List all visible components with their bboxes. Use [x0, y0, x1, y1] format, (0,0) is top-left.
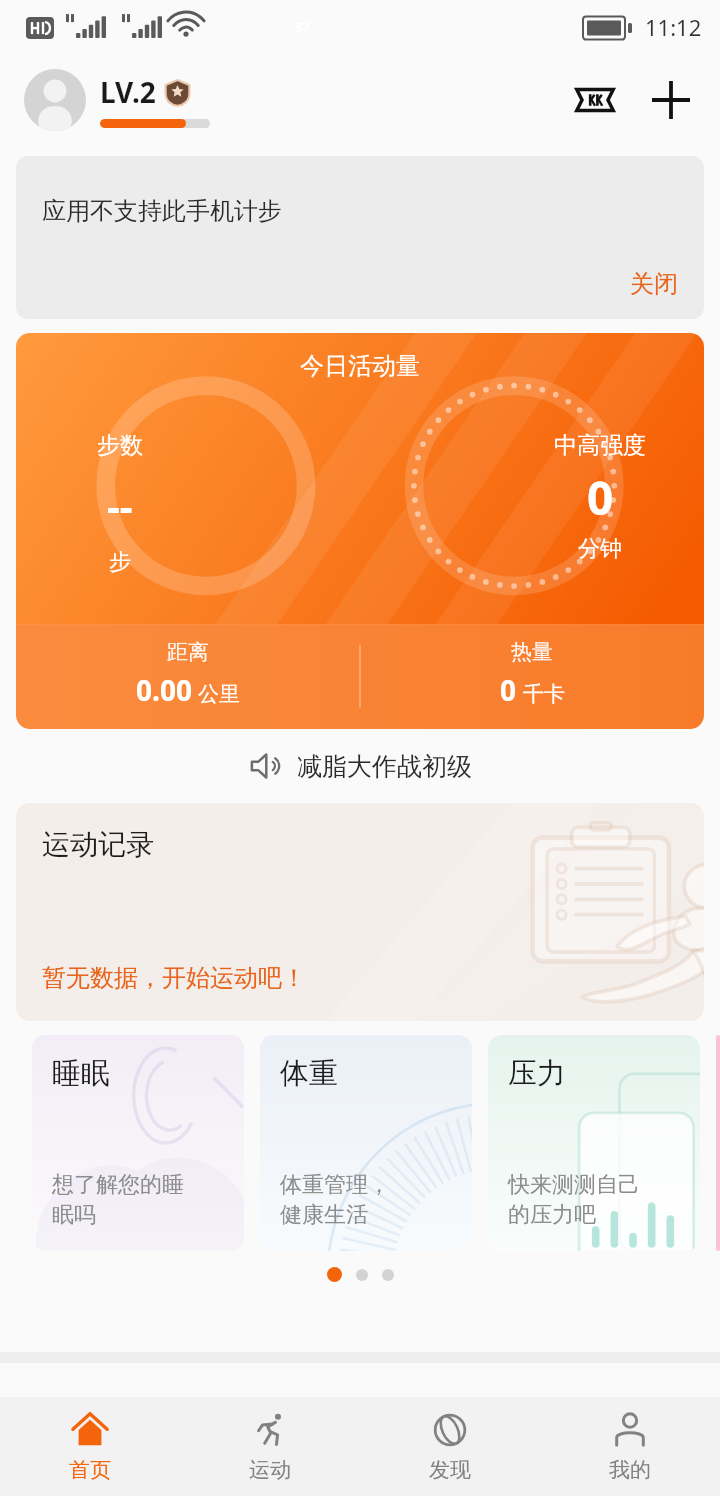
staticText: 0	[500, 671, 517, 709]
button[interactable]: 体重	[260, 1035, 472, 1251]
button[interactable]: 首页	[0, 1397, 180, 1496]
staticText: 压力	[508, 1055, 566, 1092]
staticText: 今日活动量	[300, 351, 420, 381]
staticText: 千卡	[523, 681, 565, 707]
staticText: 步数	[97, 431, 143, 460]
button[interactable]: 应用不支持此手机计步	[16, 156, 704, 319]
staticText: 步	[109, 548, 131, 576]
staticText: 想了解您的睡 眠吗	[52, 1171, 184, 1229]
staticText: 体重	[280, 1055, 338, 1092]
staticText: 发现	[429, 1457, 471, 1483]
staticText: 0	[587, 466, 614, 529]
button[interactable]: Profile	[24, 69, 86, 131]
button[interactable]: 压力	[488, 1035, 700, 1251]
staticText: 快来测测自己 的压力吧	[508, 1171, 640, 1229]
staticText: 首页	[69, 1457, 111, 1483]
button[interactable]: 运动	[180, 1397, 360, 1496]
staticText: 运动记录	[42, 827, 154, 862]
staticText: 中高强度	[554, 431, 646, 460]
staticText: 睡眠	[52, 1055, 110, 1092]
button[interactable]: 睡眠	[32, 1035, 244, 1251]
staticText: 距离	[167, 639, 209, 665]
button[interactable]: 关闭	[630, 269, 704, 319]
staticText: 公里	[198, 681, 240, 707]
staticText: 0.00	[136, 671, 192, 709]
staticText: 11:12	[645, 12, 702, 42]
staticText: 运动	[249, 1457, 291, 1483]
staticText: 我的	[609, 1457, 651, 1483]
button[interactable]: Add	[642, 71, 700, 129]
button[interactable]: 今日活动量	[16, 333, 704, 729]
staticText: --	[107, 478, 133, 532]
staticText: 应用不支持此手机计步	[42, 196, 282, 226]
button[interactable]: 我的	[540, 1397, 720, 1496]
staticText: LV.2	[100, 73, 156, 111]
button[interactable]: 运动记录	[16, 803, 704, 1021]
button[interactable]: 减脂大作战初级	[0, 743, 720, 789]
button[interactable]: Coupons	[566, 71, 624, 129]
staticText: 暂无数据，开始运动吧！	[42, 963, 306, 993]
staticText: 分钟	[578, 535, 622, 563]
staticText: 减脂大作战初级	[297, 751, 472, 782]
staticText: 热量	[511, 639, 553, 665]
staticText: 体重管理， 健康生活	[280, 1171, 390, 1229]
button[interactable]: LV.2	[100, 73, 210, 128]
button[interactable]: 发现	[360, 1397, 540, 1496]
staticText: 关闭	[630, 269, 678, 299]
